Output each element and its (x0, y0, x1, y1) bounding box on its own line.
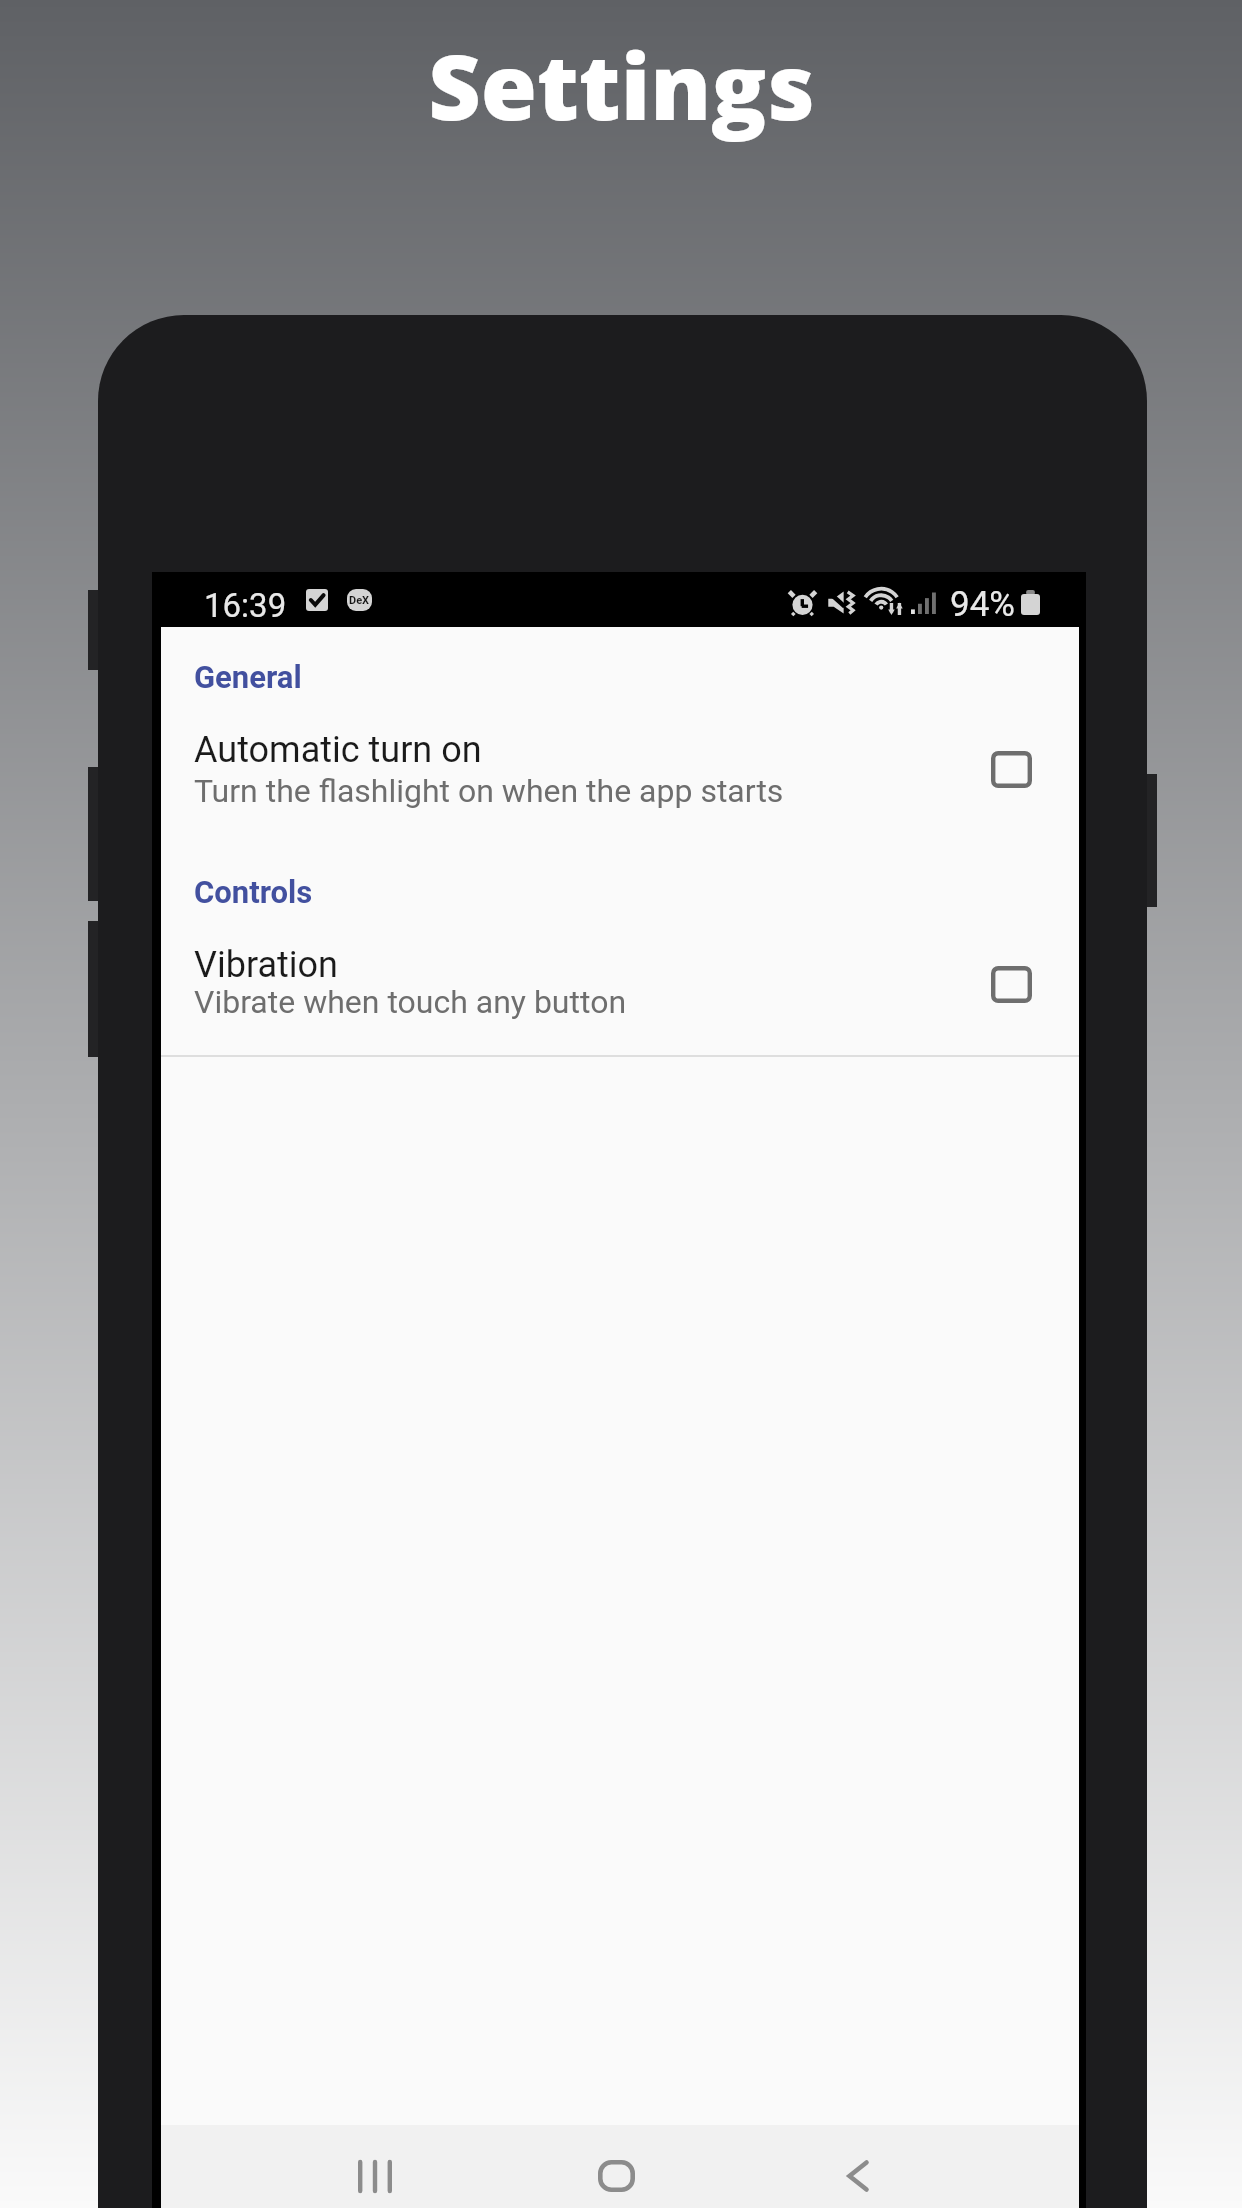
button[interactable]: Vibration (161, 917, 1079, 1025)
staticText: Controls (194, 874, 313, 910)
staticText: 16:39 (204, 586, 287, 625)
button[interactable]: Recent apps (321, 2143, 429, 2208)
button[interactable]: Home (562, 2143, 670, 2208)
staticText: Settings (428, 23, 815, 147)
button[interactable]: Automatic turn on (161, 702, 1079, 810)
button[interactable]: Toggle Vibration (967, 936, 1055, 1032)
staticText: Automatic turn on (194, 729, 482, 771)
staticText: Vibration (194, 944, 338, 986)
button[interactable]: Toggle Automatic turn on (967, 721, 1055, 817)
staticText: 94% (950, 584, 1015, 625)
button[interactable]: Back (804, 2143, 912, 2208)
staticText: Vibrate when touch any button (194, 983, 627, 1021)
staticText: Turn the flashlight on when the app star… (194, 772, 784, 810)
staticText: General (194, 659, 302, 695)
staticText: DeX (349, 594, 370, 607)
